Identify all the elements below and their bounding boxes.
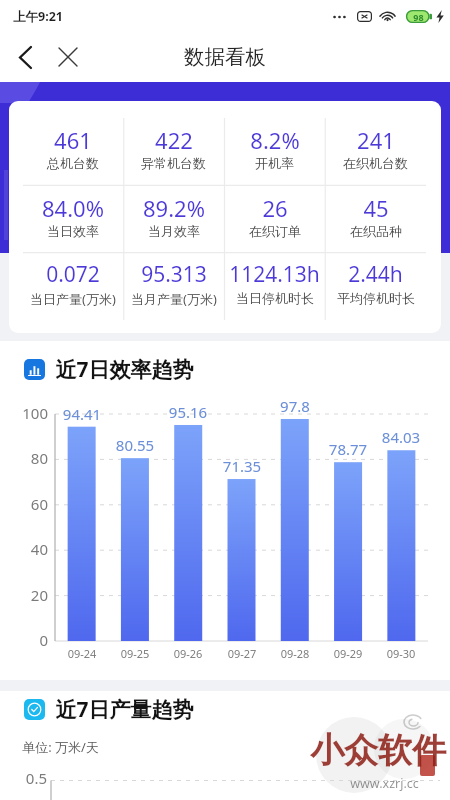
staticText: 45 bbox=[363, 193, 389, 223]
staticText: 20 bbox=[3, 585, 48, 605]
staticText: 09-29 bbox=[318, 646, 378, 661]
staticText: 100 bbox=[3, 403, 48, 423]
staticText: 当日停机时长 bbox=[236, 290, 314, 306]
staticText: 09-25 bbox=[105, 646, 165, 661]
staticText: 97.8 bbox=[265, 396, 325, 416]
staticText: 2.44h bbox=[348, 260, 403, 289]
staticText: 09-24 bbox=[52, 646, 112, 661]
staticText: 09-27 bbox=[212, 646, 272, 661]
staticText: 0.5 bbox=[2, 768, 47, 788]
staticText: 461 bbox=[54, 125, 92, 155]
button[interactable]: 关闭 bbox=[48, 37, 88, 77]
staticText: 总机台数 bbox=[47, 155, 99, 171]
staticText: 95.16 bbox=[158, 402, 218, 422]
staticText: 近7日产量趋势 bbox=[55, 695, 194, 724]
staticText: 异常机台数 bbox=[141, 155, 206, 171]
staticText: 09-30 bbox=[371, 646, 431, 661]
staticText: 开机率 bbox=[255, 155, 294, 171]
staticText: 0 bbox=[3, 630, 48, 650]
staticText: 在织品种 bbox=[350, 223, 402, 239]
staticText: 单位: 万米/天 bbox=[22, 738, 99, 756]
staticText: 09-26 bbox=[158, 646, 218, 661]
staticText: 近7日效率趋势 bbox=[55, 355, 194, 384]
staticText: 95.313 bbox=[141, 260, 207, 289]
staticText: 80.55 bbox=[105, 435, 165, 455]
staticText: 0.072 bbox=[46, 260, 100, 289]
staticText: 小众软件 bbox=[310, 729, 446, 772]
staticText: 1124.13h bbox=[229, 260, 320, 289]
staticText: 当日产量(万米) bbox=[30, 290, 116, 308]
staticText: 数据看板 bbox=[184, 44, 266, 70]
staticText: 422 bbox=[155, 125, 193, 155]
staticText: 80 bbox=[3, 448, 48, 468]
staticText: 241 bbox=[357, 125, 395, 155]
staticText: 84.03 bbox=[371, 427, 431, 447]
staticText: 当日效率 bbox=[47, 223, 99, 239]
staticText: 在织订单 bbox=[249, 223, 301, 239]
staticText: 8.2% bbox=[250, 125, 300, 155]
staticText: 当月效率 bbox=[148, 223, 200, 239]
staticText: 89.2% bbox=[143, 193, 205, 223]
staticText: 当月产量(万米) bbox=[131, 290, 217, 308]
staticText: 84.0% bbox=[42, 193, 104, 223]
staticText: 平均停机时长 bbox=[337, 290, 415, 306]
staticText: 在织机台数 bbox=[343, 155, 408, 171]
button[interactable]: 返回 bbox=[5, 37, 45, 77]
staticText: 94.41 bbox=[52, 404, 112, 424]
staticText: 09-28 bbox=[265, 646, 325, 661]
staticText: 78.77 bbox=[318, 439, 378, 459]
staticText: 60 bbox=[3, 494, 48, 514]
staticText: 上午9:21 bbox=[13, 8, 63, 25]
staticText: www.xzrj.cc bbox=[350, 775, 419, 792]
staticText: 26 bbox=[262, 193, 288, 223]
staticText: 40 bbox=[3, 539, 48, 559]
staticText: 71.35 bbox=[212, 456, 272, 476]
staticText: 98 bbox=[413, 11, 424, 23]
